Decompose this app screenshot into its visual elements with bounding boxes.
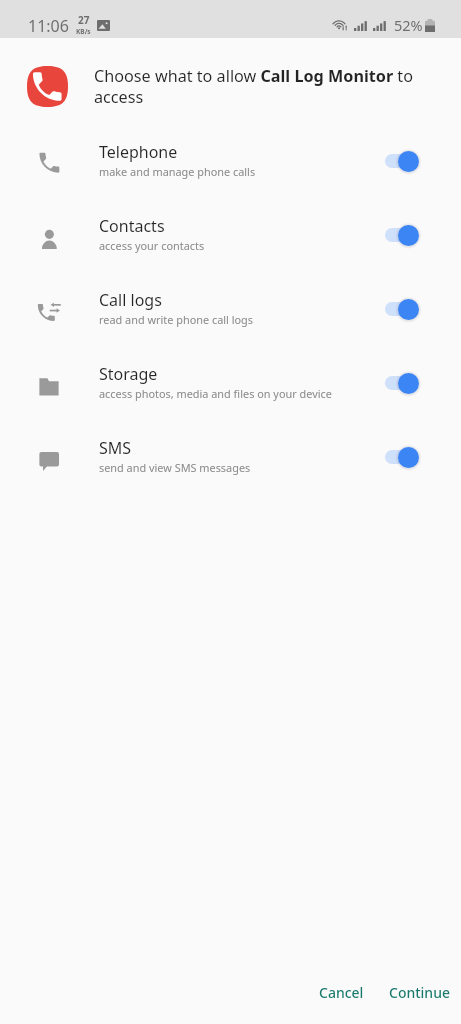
button[interactable]: Cancel xyxy=(311,975,372,1010)
staticText: 11:06 xyxy=(28,15,69,37)
staticText: read and write phone call logs xyxy=(99,312,254,327)
staticText: access photos, media and files on your d… xyxy=(99,386,332,401)
staticText: KB/s xyxy=(76,27,91,36)
staticText: Contacts xyxy=(99,215,165,237)
staticText: SMS xyxy=(99,437,132,459)
staticText: Telephone xyxy=(99,141,178,163)
button[interactable]: Continue xyxy=(381,975,458,1010)
button[interactable]: Storage xyxy=(0,346,461,420)
staticText: Storage xyxy=(99,363,158,385)
button[interactable]: Toggle permission xyxy=(385,224,419,246)
staticText: Cancel xyxy=(319,983,364,1002)
button[interactable]: Toggle permission xyxy=(385,150,419,172)
staticText: make and manage phone calls xyxy=(99,164,256,179)
button[interactable]: SMS xyxy=(0,420,461,494)
staticText: Continue xyxy=(389,983,450,1002)
staticText: 52% xyxy=(394,15,423,35)
button[interactable]: Toggle permission xyxy=(385,446,419,468)
button[interactable]: Toggle permission xyxy=(385,372,419,394)
button[interactable]: Contacts xyxy=(0,198,461,272)
button[interactable]: Toggle permission xyxy=(385,298,419,320)
staticText: Choose what to allow Call Log Monitor to… xyxy=(94,65,437,108)
staticText: 27 xyxy=(78,13,90,27)
staticText: send and view SMS messages xyxy=(99,460,251,475)
staticText: Call logs xyxy=(99,289,162,311)
staticText: access your contacts xyxy=(99,238,205,253)
button[interactable]: Telephone xyxy=(0,124,461,198)
button[interactable]: Call logs xyxy=(0,272,461,346)
